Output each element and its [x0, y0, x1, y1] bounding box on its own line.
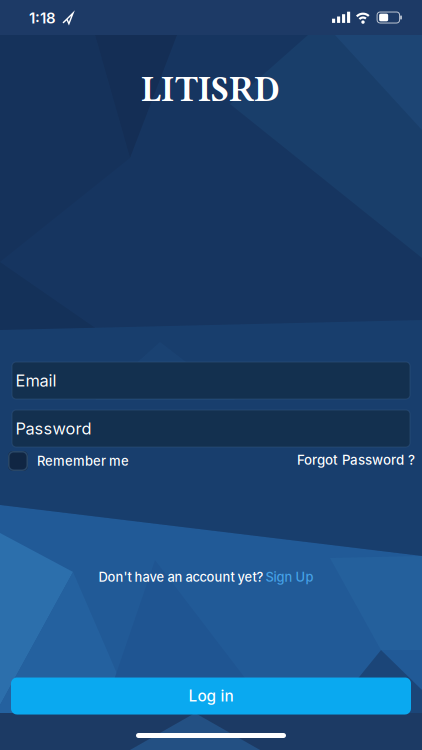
- staticText: Sign Up: [265, 569, 313, 585]
- button[interactable]: Log in: [11, 677, 411, 714]
- button[interactable]: Email: [12, 362, 410, 399]
- staticText: LITISRD: [141, 69, 280, 110]
- staticText: Don't have an account yet?: [98, 569, 263, 585]
- staticText: 1:18: [29, 9, 56, 27]
- staticText: Password: [15, 419, 91, 438]
- button[interactable]: Remember me: [8, 451, 129, 471]
- staticText: Email: [15, 371, 56, 390]
- staticText: Log in: [188, 687, 233, 705]
- button[interactable]: Sign Up: [265, 569, 313, 585]
- staticText: Remember me: [37, 453, 129, 469]
- staticText: Forgot Password ?: [297, 452, 415, 468]
- button[interactable]: Password: [12, 410, 410, 447]
- button[interactable]: Forgot Password ?: [297, 452, 415, 468]
